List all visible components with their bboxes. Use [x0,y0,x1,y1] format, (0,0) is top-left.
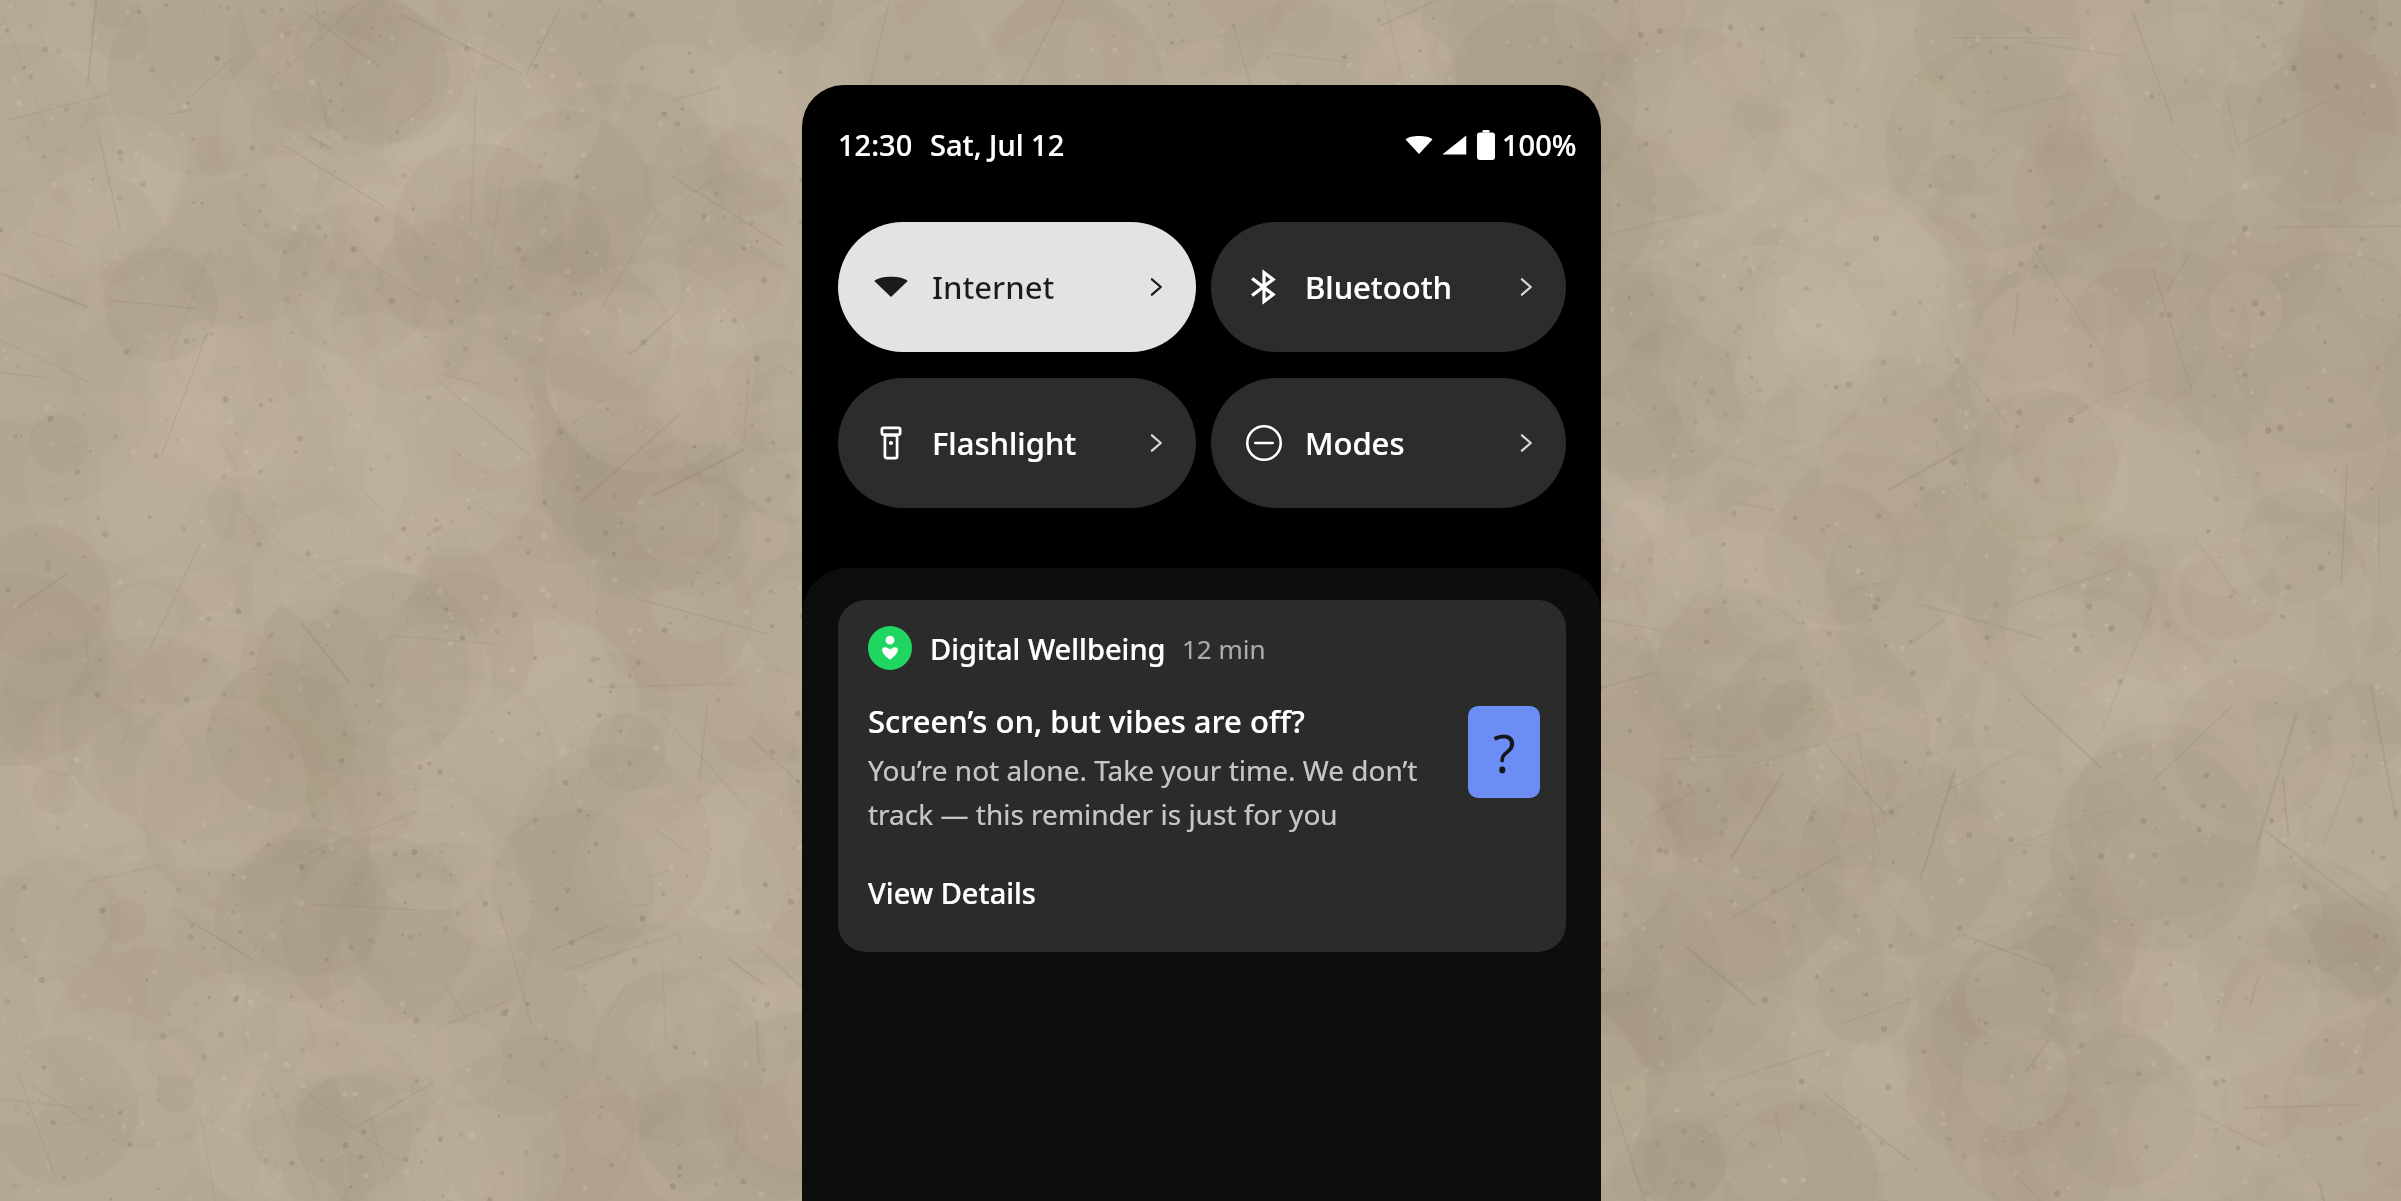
staticText: View Details [868,873,1036,912]
button[interactable]: Digital Wellbeing [838,600,1566,952]
staticText: You’re not alone. Take your time. We don… [868,751,1418,789]
button[interactable]: View Details [868,873,1036,912]
button[interactable]: Internet [838,222,1196,352]
button[interactable]: Modes [1211,378,1566,508]
staticText: Modes [1305,422,1405,464]
staticText: track — this reminder is just for you [868,795,1338,833]
staticText: ? [1493,717,1516,788]
staticText: 100% [1502,125,1577,164]
staticText: Sat, Jul 12 [930,125,1065,164]
staticText: 12 min [1182,631,1266,666]
staticText: Digital Wellbeing [930,629,1166,668]
staticText: 12:30 [838,125,913,164]
staticText: Flashlight [932,422,1077,464]
button[interactable]: Bluetooth [1211,222,1566,352]
staticText: Bluetooth [1305,266,1452,308]
staticText: Screen’s on, but vibes are off? [868,700,1305,742]
button[interactable]: Flashlight [838,378,1196,508]
staticText: Internet [932,266,1055,308]
